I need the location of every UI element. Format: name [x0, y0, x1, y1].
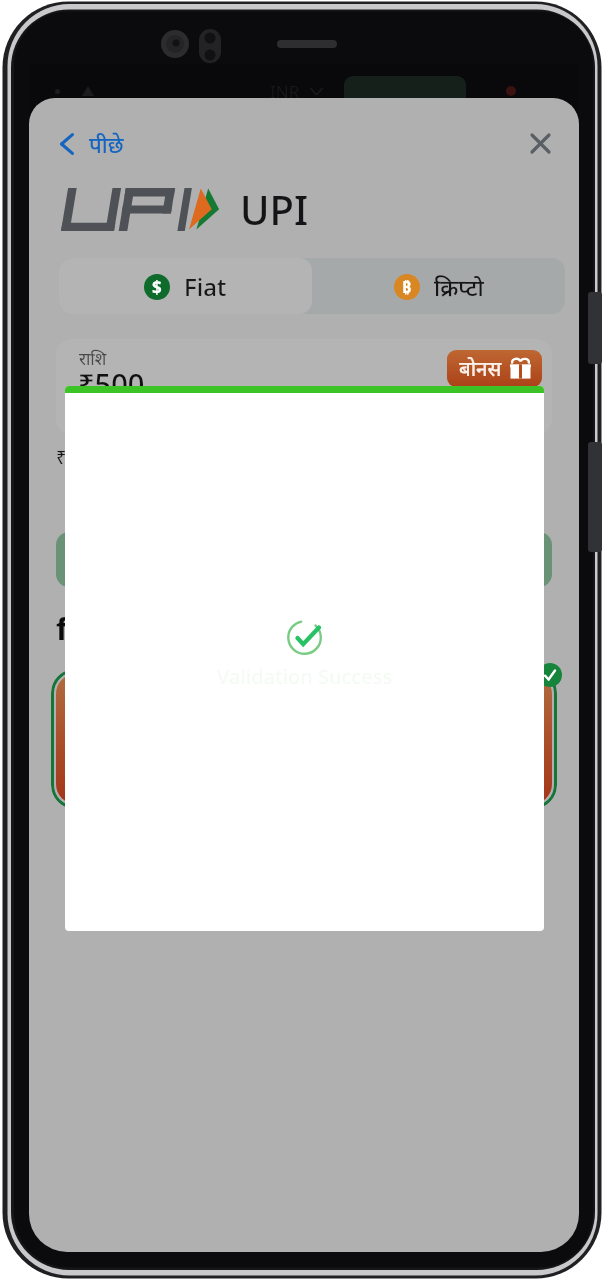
staticText: Fiat — [184, 270, 227, 303]
staticText: ₿ — [402, 276, 412, 298]
button[interactable]: पीछे — [56, 121, 128, 167]
staticText: for — [56, 607, 102, 649]
button[interactable]: ₿ — [312, 258, 565, 314]
staticText: $ — [152, 276, 162, 299]
button[interactable]: बोनस — [447, 350, 542, 387]
staticText: INR — [270, 80, 300, 103]
button[interactable]: Close — [522, 125, 559, 162]
staticText: ₹500 — [78, 364, 145, 403]
staticText: बोनस — [459, 355, 502, 382]
staticText: राशि — [79, 347, 107, 370]
button[interactable] — [56, 532, 552, 587]
staticText: UPI — [240, 182, 309, 236]
button[interactable] — [56, 674, 552, 804]
staticText: Validation Success — [217, 663, 393, 690]
staticText: क्रिप्टो — [434, 271, 484, 302]
staticText: ₹ — [56, 445, 67, 470]
button[interactable]: $ — [59, 258, 312, 314]
staticText: पीछे — [89, 129, 124, 159]
